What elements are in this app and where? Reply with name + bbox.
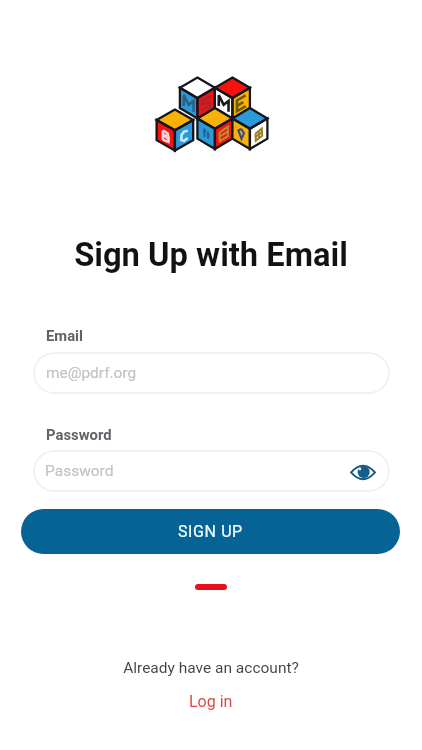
staticText: Password xyxy=(46,426,112,443)
staticText: Log in xyxy=(189,692,233,711)
staticText: Email xyxy=(46,327,83,344)
button[interactable]: Log in xyxy=(181,689,241,713)
button[interactable]: Password xyxy=(33,450,390,492)
staticText: me@pdrf.org xyxy=(46,364,137,382)
button[interactable]: SIGN UP xyxy=(21,509,400,554)
staticText: Password xyxy=(45,462,114,480)
button[interactable]: me@pdrf.org xyxy=(33,352,390,394)
staticText: Already have an account? xyxy=(0,659,422,677)
button[interactable]: Show password xyxy=(347,455,379,487)
staticText: SIGN UP xyxy=(178,522,243,541)
staticText: Sign Up with Email xyxy=(0,236,422,274)
